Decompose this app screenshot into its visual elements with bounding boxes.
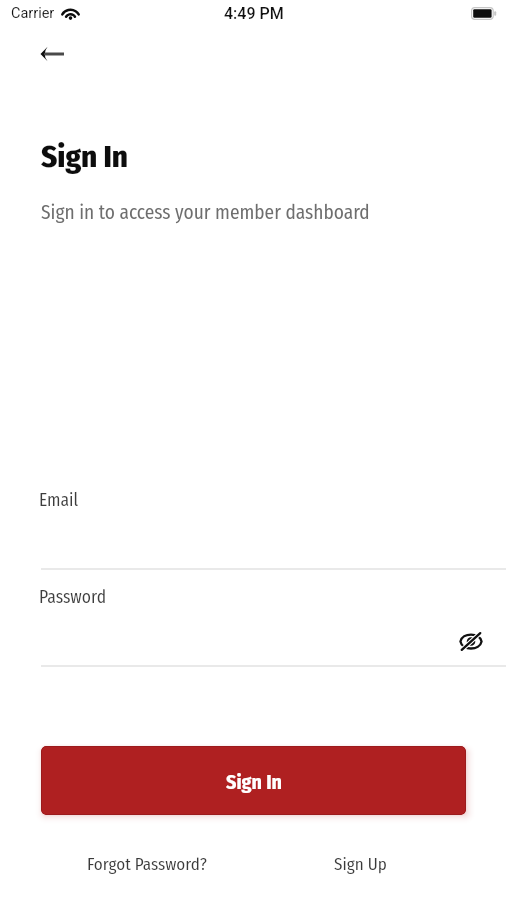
button[interactable]: Back	[32, 34, 72, 74]
button[interactable]: Sign Up	[334, 854, 387, 874]
staticText: Password	[39, 587, 107, 608]
staticText: 4:49 PM	[224, 4, 284, 23]
button[interactable]: Sign In	[41, 746, 466, 815]
staticText: Sign Up	[334, 854, 387, 874]
staticText: Sign In	[226, 770, 282, 794]
staticText: Sign in to access your member dashboard	[41, 201, 370, 224]
button[interactable]: Forgot Password?	[87, 854, 207, 874]
staticText: Email	[39, 490, 79, 511]
staticText: Sign In	[41, 138, 129, 175]
button[interactable]: Show password	[452, 623, 489, 660]
staticText: Carrier	[11, 5, 55, 22]
staticText: Forgot Password?	[87, 854, 207, 874]
